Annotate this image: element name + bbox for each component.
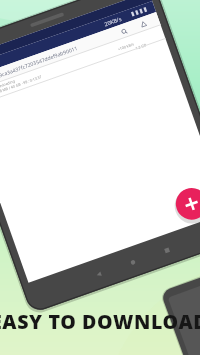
button[interactable]: Download item <box>74 44 184 66</box>
button[interactable]: Add download <box>98 242 126 270</box>
button[interactable]: Filter: All <box>88 30 128 44</box>
